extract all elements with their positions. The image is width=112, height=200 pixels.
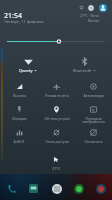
staticText: Отключить [84, 139, 103, 144]
button[interactable]: Phone [6, 183, 17, 194]
staticText: Вызовы [13, 93, 26, 98]
button[interactable]: AdGHT [0, 124, 38, 147]
button[interactable]: Settings [87, 4, 95, 12]
button[interactable]: Qwerty [0, 52, 56, 78]
button[interactable]: Об этом устрой [38, 101, 75, 124]
button[interactable]: Browser [95, 183, 106, 194]
staticText: Режим полёта [45, 93, 69, 98]
staticText: Москва [88, 19, 99, 23]
button[interactable]: User account [99, 4, 107, 12]
staticText: Четверг, 11 февраля [4, 19, 44, 24]
button[interactable]: Brightness [0, 35, 112, 48]
staticText: Фонарик [12, 116, 27, 121]
staticText: Автоповорот [83, 93, 105, 98]
button[interactable]: Передача изображения [75, 101, 112, 124]
staticText: AdGHT [13, 139, 25, 144]
staticText: 27°С · Ясно [80, 13, 99, 18]
staticText: Точка доступа [45, 139, 69, 144]
button[interactable]: All apps [51, 183, 62, 194]
staticText: Передача изображения [82, 116, 105, 124]
button[interactable]: Bluetooth [56, 52, 112, 78]
button[interactable]: Вызовы [0, 78, 38, 101]
staticText: Qwerty [19, 68, 33, 73]
button[interactable]: Фонарик [0, 101, 38, 124]
button[interactable]: Точка доступа [38, 124, 75, 147]
button[interactable]: Отключить [75, 124, 112, 147]
button[interactable]: Messages [28, 183, 39, 194]
staticText: Bluetooth [73, 68, 92, 73]
button[interactable]: Maps [73, 183, 84, 194]
button[interactable]: Режим полёта [38, 78, 75, 101]
button[interactable]: Автоповорот [75, 78, 112, 101]
staticText: Об этом устрой [44, 116, 70, 121]
button[interactable]: Edit tiles [78, 4, 85, 11]
staticText: 21:54 [4, 11, 22, 21]
staticText: 27°С [52, 166, 61, 171]
